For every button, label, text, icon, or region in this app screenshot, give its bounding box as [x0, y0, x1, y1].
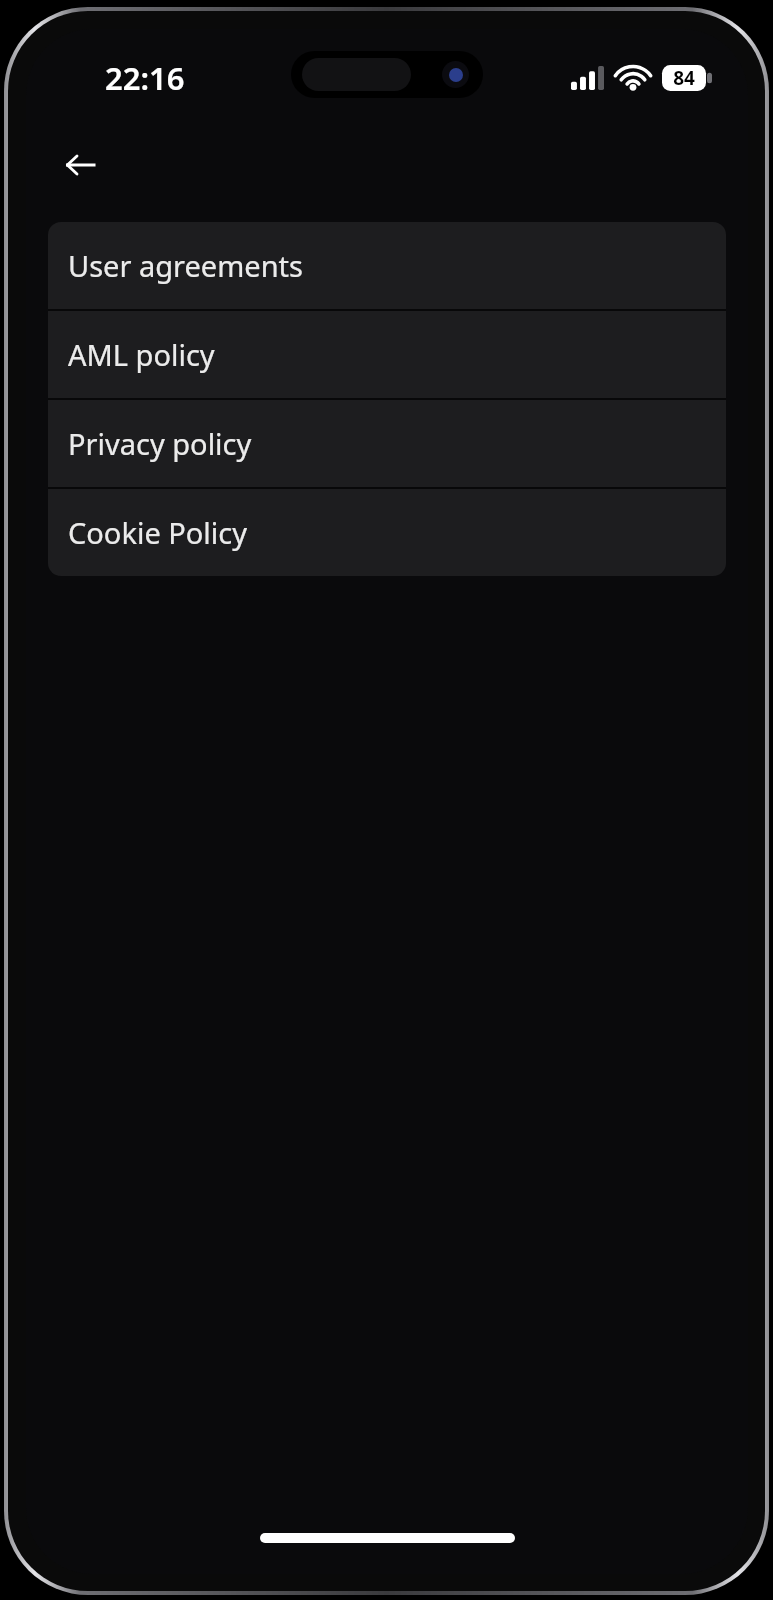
button[interactable]: AML policy	[48, 311, 726, 398]
staticText: User agreements	[68, 246, 303, 285]
staticText: AML policy	[68, 335, 215, 374]
button[interactable]: User agreements	[48, 222, 726, 309]
staticText: Cookie Policy	[68, 513, 248, 552]
button[interactable]: Privacy policy	[48, 400, 726, 487]
staticText: 84	[673, 65, 695, 91]
button[interactable]: Cookie Policy	[48, 489, 726, 576]
staticText: 22:16	[105, 57, 185, 99]
button[interactable]: Back	[52, 137, 108, 193]
staticText: Privacy policy	[68, 424, 252, 463]
